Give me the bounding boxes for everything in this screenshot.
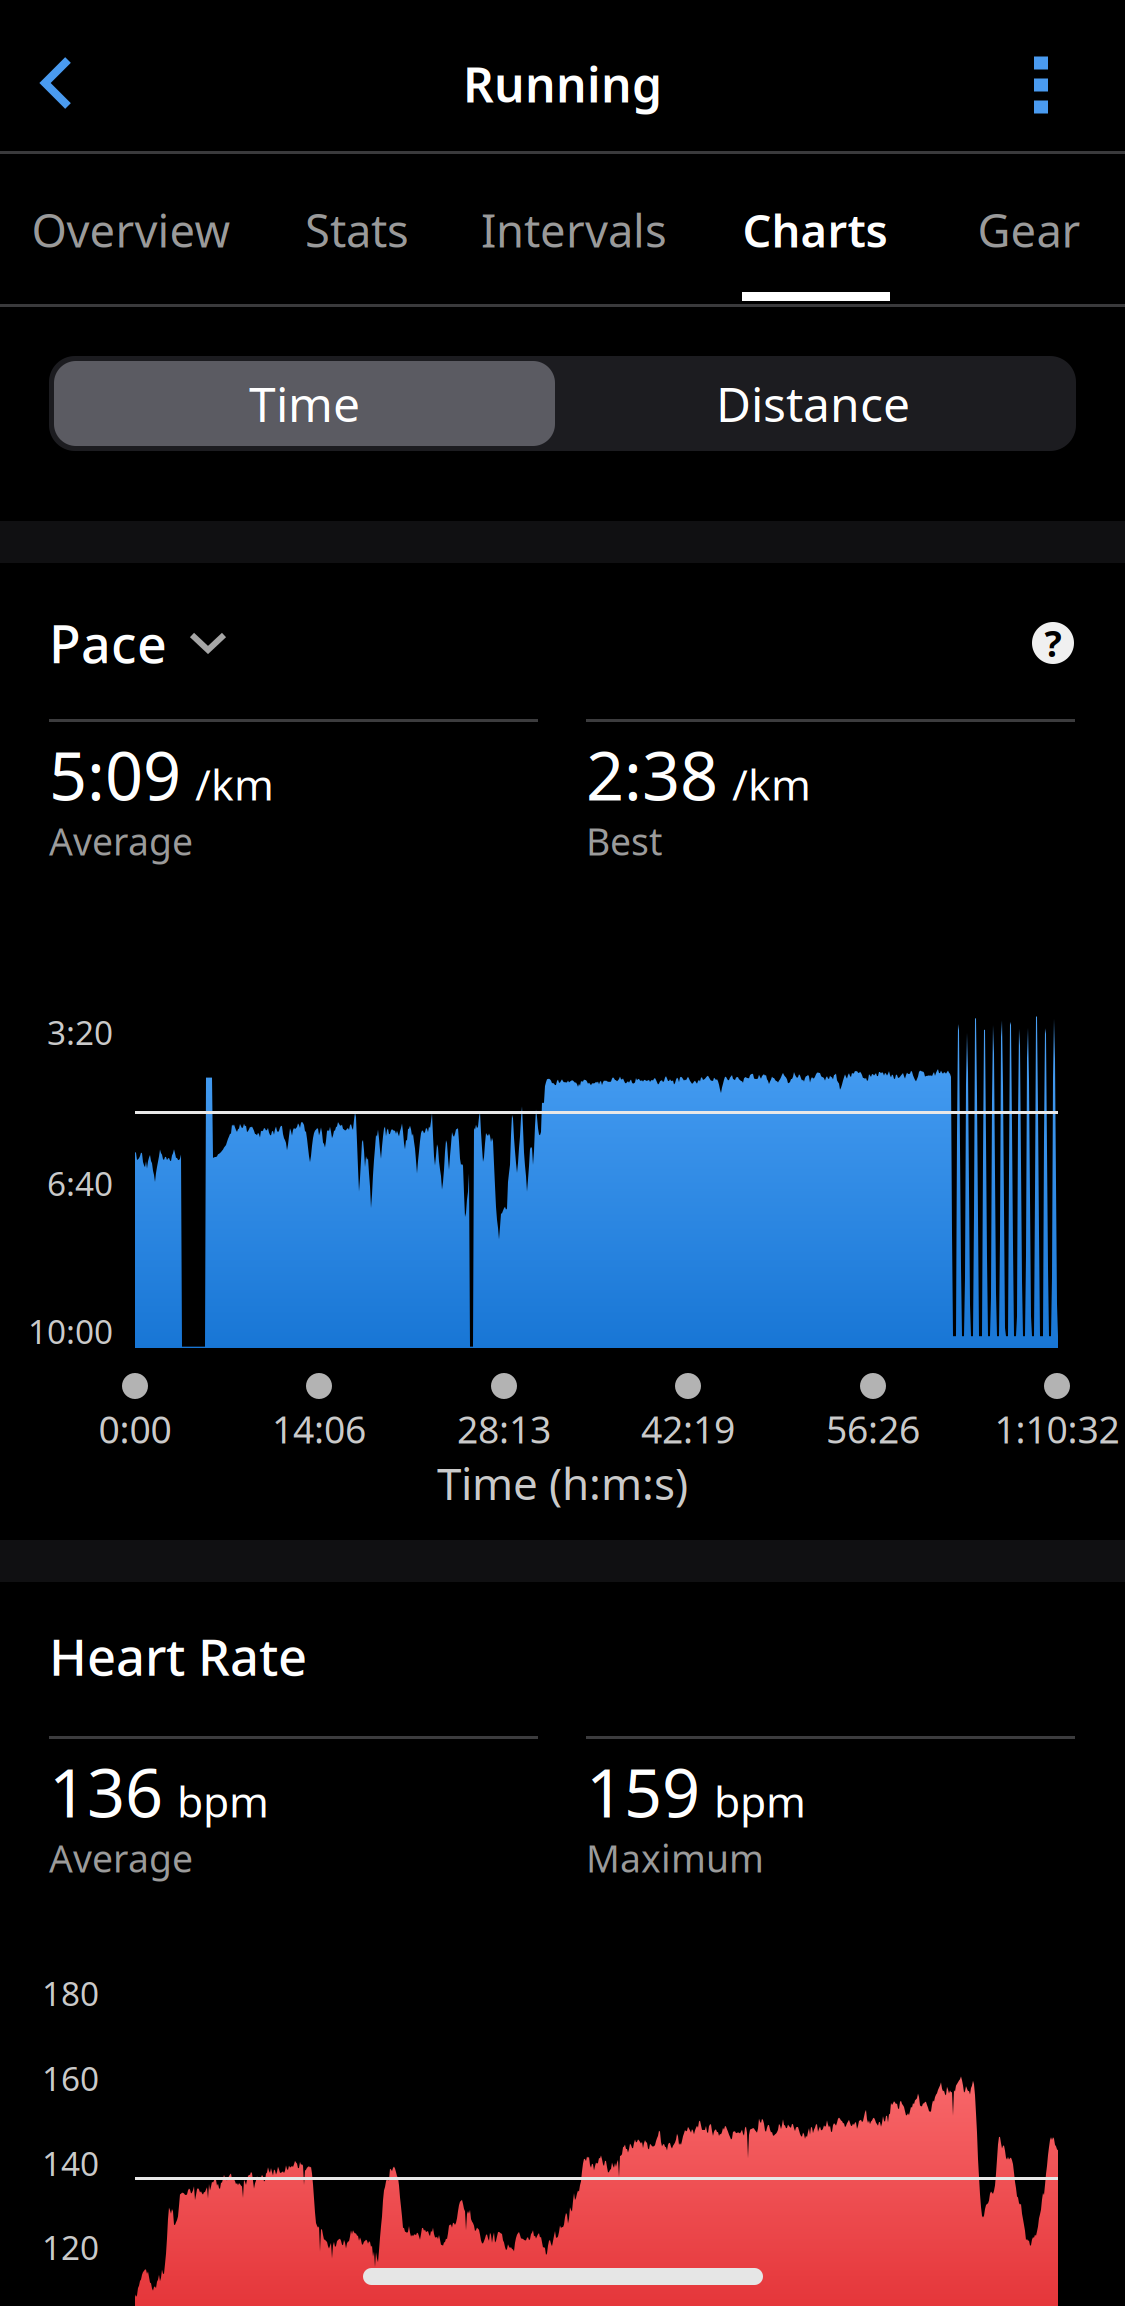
staticText: Running: [463, 52, 662, 116]
staticText: Time: [249, 372, 360, 435]
staticText: /km: [732, 756, 811, 812]
staticText: Gear: [977, 200, 1080, 260]
button[interactable]: Stats: [272, 171, 442, 289]
button[interactable]: Gear: [950, 171, 1108, 289]
staticText: 56:26: [826, 1404, 920, 1454]
staticText: 0:00: [98, 1404, 171, 1454]
staticText: 159: [586, 1747, 700, 1836]
staticText: ?: [1044, 619, 1061, 667]
button[interactable]: Intervals: [455, 171, 693, 289]
staticText: Time (h:m:s): [437, 1454, 688, 1512]
staticText: Stats: [305, 200, 409, 260]
staticText: bpm: [177, 1773, 269, 1829]
button[interactable]: Time: [54, 361, 555, 446]
button[interactable]: Help about Pace: [1032, 622, 1074, 664]
staticText: 3:20: [47, 1010, 113, 1054]
staticText: 28:13: [457, 1404, 551, 1454]
staticText: 140: [42, 2141, 99, 2185]
button[interactable]: Overview: [3, 171, 259, 289]
staticText: Intervals: [481, 200, 667, 260]
staticText: 42:19: [641, 1404, 735, 1454]
staticText: Heart Rate: [49, 1622, 307, 1690]
staticText: Maximum: [586, 1833, 764, 1883]
staticText: 136: [49, 1747, 163, 1836]
button[interactable]: Charts: [712, 171, 917, 289]
staticText: Distance: [716, 372, 910, 435]
staticText: Average: [49, 816, 193, 866]
staticText: 160: [42, 2056, 99, 2100]
staticText: 6:40: [47, 1161, 113, 1205]
staticText: bpm: [714, 1773, 806, 1829]
button[interactable]: More options: [986, 29, 1096, 141]
staticText: 120: [42, 2225, 99, 2269]
button[interactable]: Pace: [49, 612, 349, 674]
staticText: 14:06: [272, 1404, 366, 1454]
staticText: Best: [586, 816, 662, 866]
staticText: 10:00: [28, 1309, 113, 1353]
button[interactable]: Back: [2, 27, 112, 139]
staticText: Pace: [49, 608, 167, 678]
staticText: 180: [42, 1971, 99, 2015]
staticText: Charts: [742, 200, 887, 260]
staticText: 2:38: [586, 730, 718, 819]
staticText: Overview: [31, 200, 230, 260]
staticText: Average: [49, 1833, 193, 1883]
staticText: 1:10:32: [994, 1404, 1119, 1454]
button[interactable]: Distance: [555, 361, 1071, 446]
staticText: 5:09: [49, 730, 181, 819]
staticText: /km: [195, 756, 274, 812]
